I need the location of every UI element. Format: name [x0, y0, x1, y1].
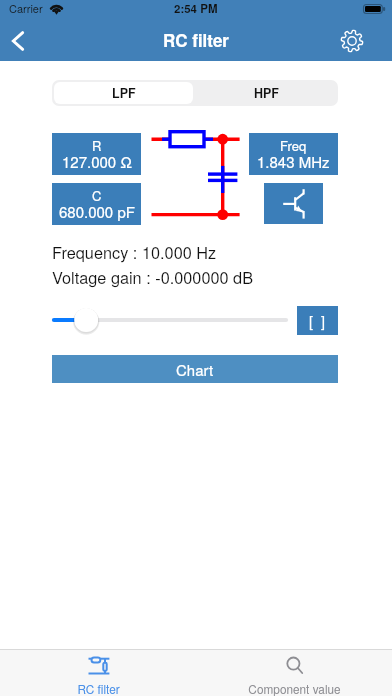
button[interactable]: Component value: [196, 650, 392, 696]
button[interactable]: C: [52, 183, 141, 225]
staticText: 1.843 MHz: [257, 151, 330, 172]
button[interactable]: HPF: [195, 80, 338, 106]
staticText: R: [92, 136, 102, 155]
staticText: Chart: [176, 359, 214, 380]
staticText: C: [92, 186, 102, 205]
staticText: RC filter: [163, 28, 229, 52]
button[interactable]: Frequency slider: [52, 301, 288, 339]
staticText: Voltage gain : -0.000000 dB: [52, 265, 254, 288]
staticText: Frequency : 10.000 Hz: [52, 240, 217, 263]
button[interactable]: RC filter: [0, 650, 196, 696]
button[interactable]: Settings: [334, 23, 370, 59]
button[interactable]: Freq: [249, 133, 338, 175]
staticText: HPF: [254, 84, 280, 102]
staticText: [ ]: [309, 310, 326, 331]
button[interactable]: LPF: [54, 82, 193, 104]
button[interactable]: Set value: [297, 306, 338, 335]
staticText: Component value: [248, 680, 341, 696]
button[interactable]: Back: [0, 23, 36, 59]
staticText: RC filter: [77, 680, 120, 696]
staticText: LPF: [112, 84, 136, 102]
staticText: 2:54 PM: [174, 0, 218, 16]
button[interactable]: R: [52, 133, 141, 175]
staticText: Freq: [280, 136, 307, 155]
staticText: Carrier: [9, 0, 43, 16]
staticText: 680.000 pF: [59, 201, 135, 222]
button[interactable]: Transistor: [264, 183, 323, 224]
staticText: 127.000 Ω: [62, 151, 132, 172]
button[interactable]: Chart: [52, 355, 338, 383]
